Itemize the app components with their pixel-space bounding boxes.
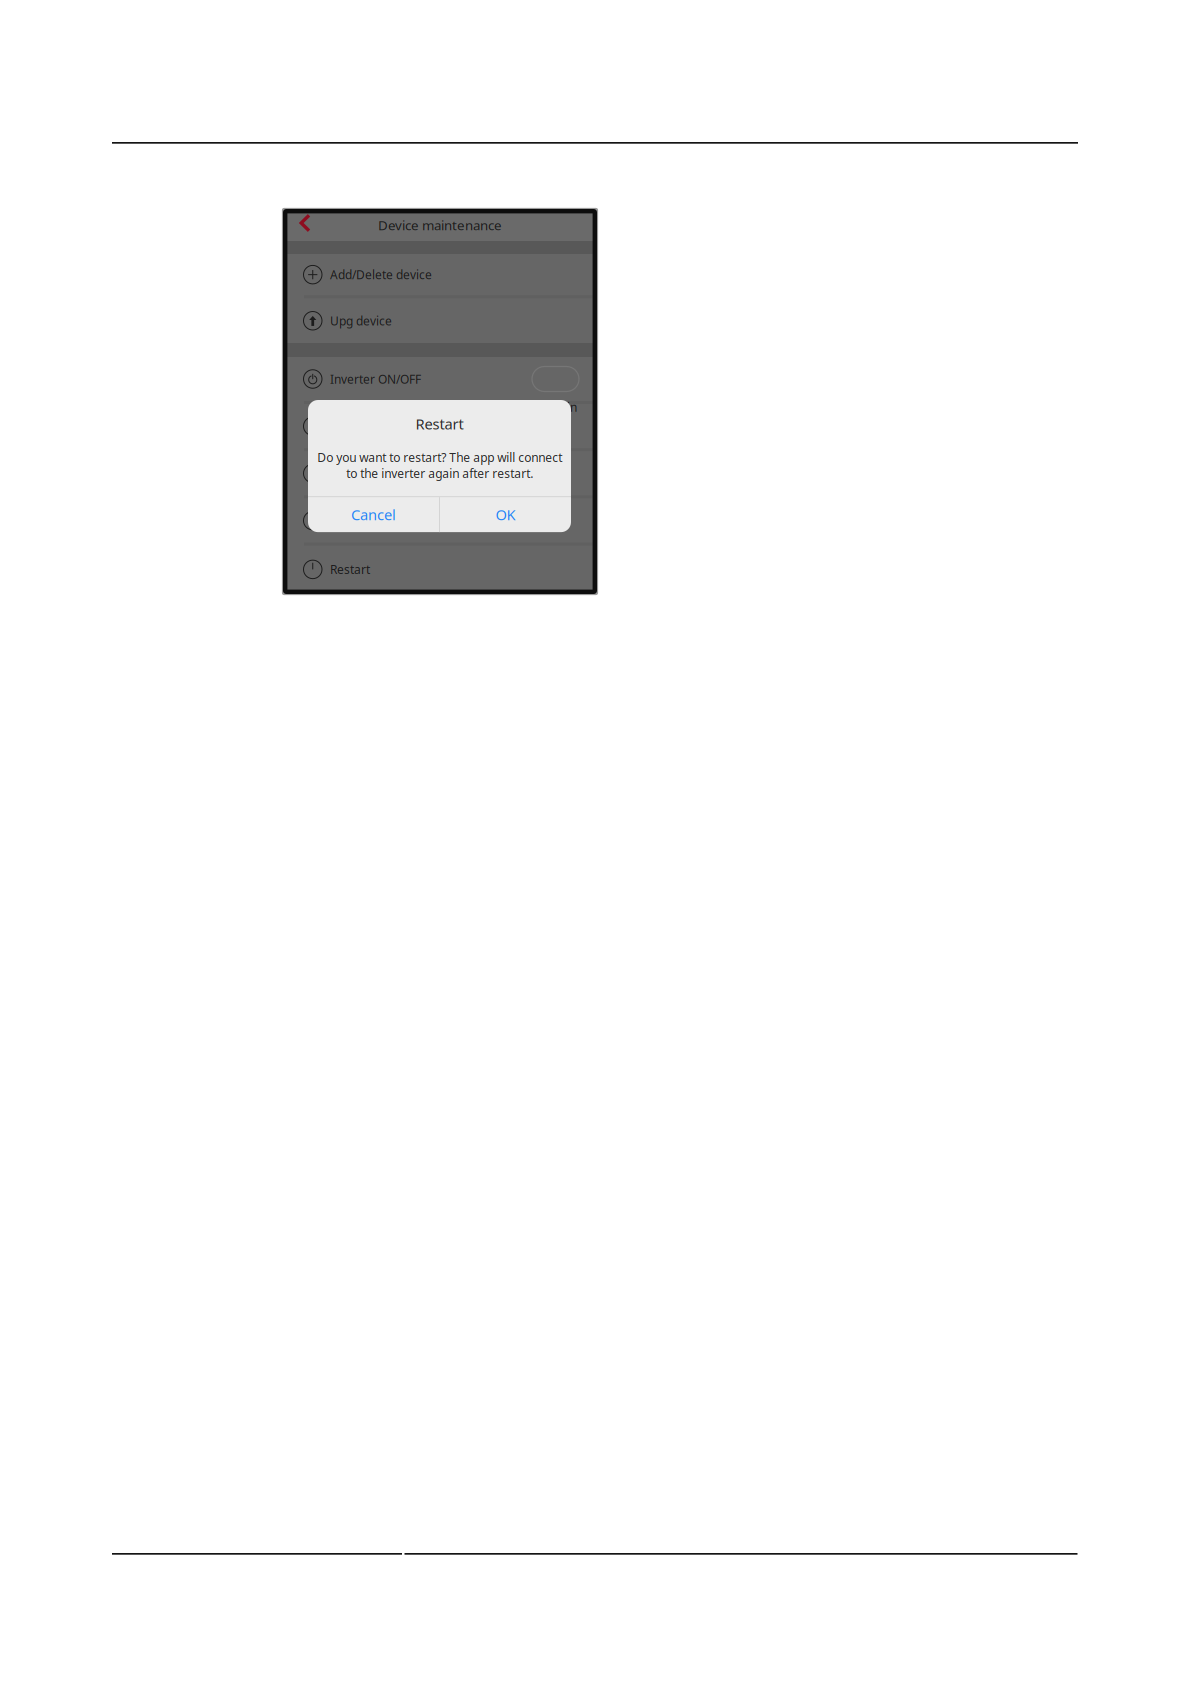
staticText: Upg device bbox=[330, 313, 392, 329]
staticText: OK bbox=[495, 505, 515, 524]
button[interactable]: Inverter ON/OFF bbox=[283, 357, 597, 404]
button[interactable]: Add/Delete device bbox=[283, 254, 597, 298]
staticText: 30min bbox=[542, 399, 577, 415]
button[interactable]: Power setting bbox=[283, 404, 597, 451]
button[interactable]: Factory reset bbox=[283, 499, 597, 546]
staticText: Grid parameter bbox=[330, 465, 417, 481]
staticText: Add/Delete device bbox=[330, 267, 432, 283]
button[interactable]: Upg device bbox=[283, 298, 597, 343]
staticText: Restart bbox=[415, 414, 463, 433]
button[interactable]: Back bbox=[283, 209, 327, 241]
staticText: Cancel bbox=[351, 505, 396, 524]
button[interactable]: Cancel bbox=[308, 497, 439, 532]
staticText: Do you want to restart? The app will con… bbox=[317, 449, 562, 481]
button[interactable]: OK bbox=[440, 497, 571, 532]
button[interactable]: Restart bbox=[283, 546, 597, 593]
staticText: Factory reset bbox=[330, 513, 403, 528]
button[interactable]: Grid parameter bbox=[283, 451, 597, 499]
staticText: Inverter ON/OFF bbox=[330, 371, 421, 387]
staticText: Restart bbox=[330, 561, 370, 577]
staticText: Device maintenance bbox=[378, 216, 502, 234]
